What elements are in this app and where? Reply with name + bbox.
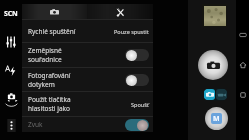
button[interactable]: Rychlé spuštění <box>22 20 153 42</box>
button[interactable]: Camera settings tab <box>22 4 87 20</box>
staticText: SCN <box>4 9 18 19</box>
button[interactable]: Scene mode <box>1 4 21 24</box>
staticText: Zeměpisné souřadnice <box>28 46 125 64</box>
staticText: Fotografování dotykem <box>28 71 125 89</box>
button[interactable]: Zeměpisné souřadnice <box>22 43 153 67</box>
button[interactable]: Toggle on <box>125 119 149 131</box>
button[interactable]: Switch camera <box>1 88 21 108</box>
button[interactable]: Toggle off <box>125 74 149 86</box>
button[interactable]: Back <box>236 28 249 41</box>
staticText: Zvuk <box>28 120 125 129</box>
button[interactable]: Toggle off <box>125 49 149 61</box>
staticText: Rychlé spuštění <box>28 27 114 36</box>
button[interactable]: Home <box>236 58 249 71</box>
staticText: Spoušť <box>131 101 149 108</box>
button[interactable]: Manual mode <box>205 107 228 130</box>
button[interactable]: Tools tab <box>87 4 153 20</box>
button[interactable]: Fotografování dotykem <box>22 68 153 91</box>
staticText: Pouze spustit <box>114 28 149 35</box>
button[interactable]: Použít tlačítka hlasitosti jako <box>22 92 153 116</box>
staticText: Použít tlačítka hlasitosti jako <box>28 95 131 113</box>
staticText: M <box>213 114 220 124</box>
button[interactable]: Zvuk <box>22 117 153 132</box>
button[interactable]: Last photo <box>202 4 227 27</box>
button[interactable]: Image adjustments <box>1 32 21 52</box>
button[interactable]: Flash auto <box>1 60 21 80</box>
button[interactable]: Photo video mode <box>203 88 228 101</box>
button[interactable]: More options <box>1 115 21 135</box>
button[interactable]: Recents <box>236 88 249 101</box>
button[interactable]: Shutter <box>198 50 228 80</box>
